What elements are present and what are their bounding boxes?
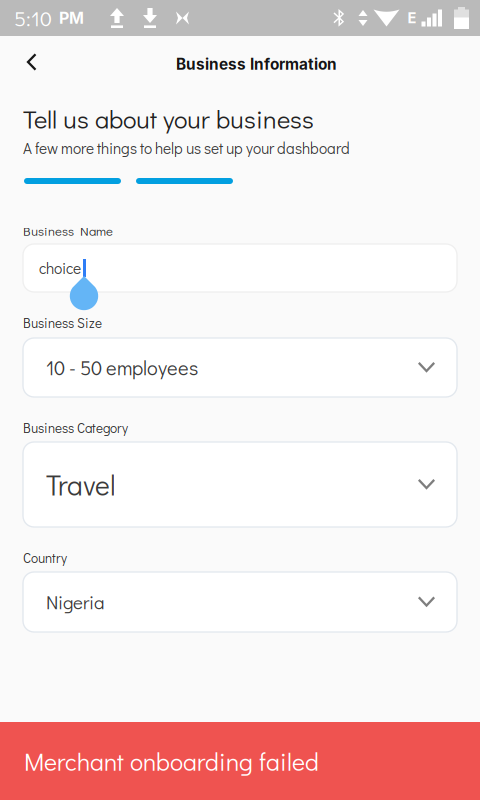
staticText: choice [39, 258, 81, 278]
staticText: Travel [46, 466, 116, 503]
staticText: 10 - 50 employees [46, 354, 198, 381]
button[interactable]: Nigeria [23, 572, 457, 632]
staticText: Tell us about your business [23, 102, 314, 135]
button[interactable]: Travel [23, 442, 457, 527]
button[interactable]: 10 - 50 employees [23, 338, 457, 397]
staticText: 5:10 [14, 4, 52, 32]
button[interactable]: Back [11, 42, 51, 82]
staticText: Business Information [176, 55, 337, 74]
staticText: E [407, 9, 416, 27]
staticText: Merchant onboarding failed [24, 745, 319, 777]
staticText: PM [59, 8, 84, 28]
staticText: Business Category [23, 419, 128, 436]
staticText: Nigeria [46, 590, 104, 614]
staticText: Business Size [23, 314, 102, 331]
staticText: Business Name [23, 222, 113, 239]
staticText: Country [23, 549, 67, 566]
staticText: A few more things to help us set up your… [23, 138, 350, 158]
